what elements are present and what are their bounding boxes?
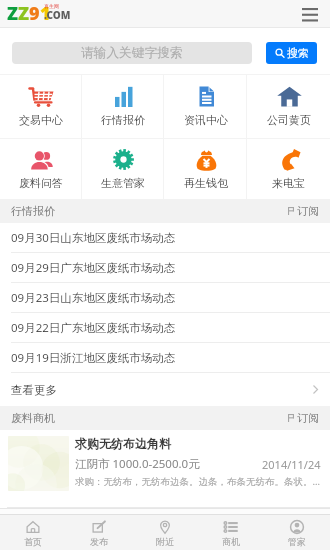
button[interactable]: 09月22日广东地区废纸市场动态: [0, 313, 330, 343]
staticText: 废料商机: [11, 411, 55, 425]
button[interactable]: 订阅: [288, 411, 319, 425]
staticText: 生意管家: [101, 176, 145, 190]
button[interactable]: 订阅: [288, 204, 319, 218]
button[interactable]: 09月19日浙江地区废纸市场动态: [0, 343, 330, 373]
staticText: .COM: [44, 8, 71, 22]
staticText: 来电宝: [272, 176, 305, 190]
button[interactable]: 查看更多: [0, 373, 330, 406]
staticText: 废料问答: [19, 176, 63, 190]
button[interactable]: 09月23日山东地区废纸市场动态: [0, 283, 330, 313]
button[interactable]: 资讯中心: [164, 75, 247, 138]
staticText: 请输入关键字搜索: [81, 45, 183, 61]
staticText: Z: [7, 1, 18, 23]
staticText: 09月22日广东地区废纸市场动态: [11, 320, 176, 336]
button[interactable]: 管家: [264, 515, 330, 550]
staticText: 商机: [222, 536, 240, 547]
staticText: 资讯中心: [184, 113, 228, 127]
staticText: 09月29日广东地区废纸市场动态: [11, 260, 176, 276]
staticText: 再生钱包: [184, 176, 228, 190]
button[interactable]: Menu: [299, 3, 321, 25]
staticText: 首页: [24, 536, 42, 547]
other: ZZ91.COM: [7, 3, 63, 25]
staticText: 09月19日浙江地区废纸市场动态: [11, 350, 176, 366]
staticText: Z: [18, 1, 29, 23]
staticText: 行情报价: [11, 204, 55, 218]
button[interactable]: 再生钱包: [164, 139, 247, 199]
staticText: 求购：无纺布，无纺布边条。边条，布条无纺布。条状。…: [75, 475, 321, 488]
button[interactable]: 发布: [66, 515, 132, 550]
staticText: 查看更多: [11, 383, 57, 397]
button[interactable]: 废料问答: [0, 139, 82, 199]
staticText: 订阅: [297, 204, 319, 218]
staticText: 江阴市 1000.0-2500.0元: [75, 456, 200, 472]
button[interactable]: 求购无纺布边角料: [0, 430, 330, 508]
staticText: 搜索: [287, 46, 309, 60]
button[interactable]: 商机: [198, 515, 264, 550]
button[interactable]: 搜索: [266, 42, 317, 64]
button[interactable]: 09月30日山东地区废纸市场动态: [0, 223, 330, 253]
staticText: 再生网: [44, 3, 59, 9]
staticText: 发布: [90, 536, 108, 547]
staticText: 09月23日山东地区废纸市场动态: [11, 290, 176, 306]
button[interactable]: 交易中心: [0, 75, 82, 138]
button[interactable]: 附近: [132, 515, 198, 550]
staticText: 求购无纺布边角料: [75, 436, 171, 451]
staticText: 管家: [288, 536, 306, 547]
staticText: 附近: [156, 536, 174, 547]
button[interactable]: 公司黄页: [247, 75, 330, 138]
staticText: 公司黄页: [267, 113, 311, 127]
button[interactable]: 09月29日广东地区废纸市场动态: [0, 253, 330, 283]
staticText: 1: [40, 1, 51, 23]
button[interactable]: 请输入关键字搜索: [12, 42, 252, 64]
button[interactable]: 行情报价: [82, 75, 164, 138]
staticText: 交易中心: [19, 113, 63, 127]
staticText: 9: [29, 1, 40, 23]
staticText: 行情报价: [101, 113, 145, 127]
staticText: 09月30日山东地区废纸市场动态: [11, 230, 176, 246]
button[interactable]: 来电宝: [247, 139, 330, 199]
button[interactable]: 首页: [0, 515, 66, 550]
button[interactable]: 生意管家: [82, 139, 164, 199]
staticText: 订阅: [297, 411, 319, 425]
staticText: 2014/11/24: [262, 457, 321, 472]
